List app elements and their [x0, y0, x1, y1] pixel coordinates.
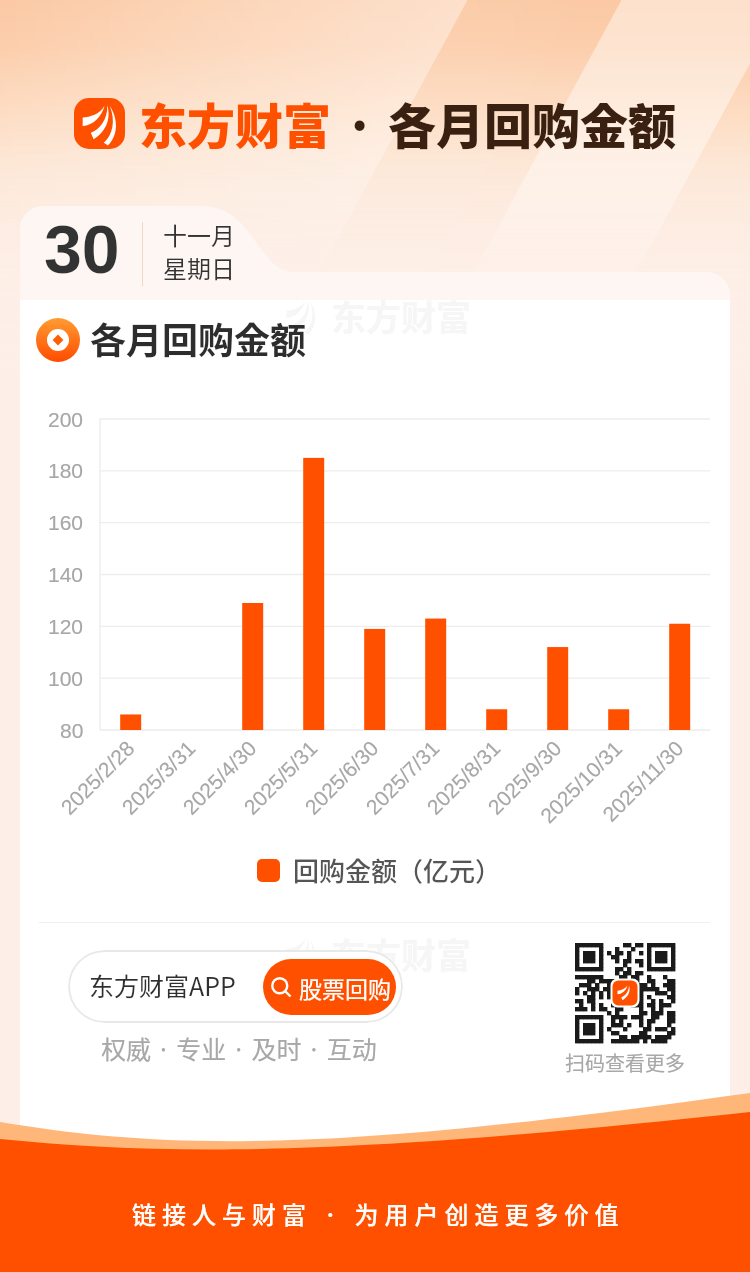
staticText: 回购金额（亿元）: [293, 851, 502, 889]
staticText: 十一月: [163, 217, 235, 252]
staticText: 扫码查看更多: [565, 1048, 685, 1077]
staticText: ·: [345, 88, 375, 158]
staticText: 星期日: [163, 250, 235, 285]
staticText: 链接人与财富 · 为用户创造更多价值: [132, 1196, 625, 1231]
staticText: 东方财富: [331, 290, 472, 341]
staticText: 股票回购: [299, 971, 391, 1004]
staticText: 权威 · 专业 · 及时 · 互动: [101, 1030, 377, 1066]
staticText: 各月回购金额: [90, 312, 307, 364]
button[interactable]: 股票回购: [263, 959, 396, 1015]
staticText: 30: [44, 211, 120, 287]
staticText: 东方财富APP: [89, 967, 236, 1003]
other: 东方财富: [74, 98, 125, 149]
staticText: 东方财富: [331, 928, 472, 979]
staticText: 各月回购金额: [388, 88, 677, 158]
button[interactable]: 东方财富APP: [68, 950, 403, 1023]
staticText: 东方财富: [139, 88, 332, 158]
